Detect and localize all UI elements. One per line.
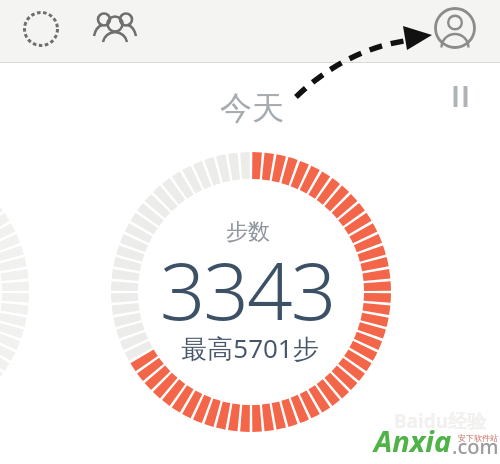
button[interactable] — [448, 80, 474, 112]
button[interactable] — [94, 8, 138, 52]
button[interactable] — [433, 6, 477, 50]
staticText: 安下软件站 — [458, 433, 498, 443]
staticText: Baidu经验 — [380, 408, 500, 434]
staticText: 3343 — [47, 234, 447, 343]
staticText: 今天 — [102, 88, 402, 128]
staticText: Anxia — [374, 421, 452, 460]
staticText: 步数 — [98, 218, 398, 246]
staticText: 最高5701步 — [100, 330, 400, 366]
staticText: .com — [452, 433, 499, 460]
button[interactable] — [22, 10, 60, 48]
